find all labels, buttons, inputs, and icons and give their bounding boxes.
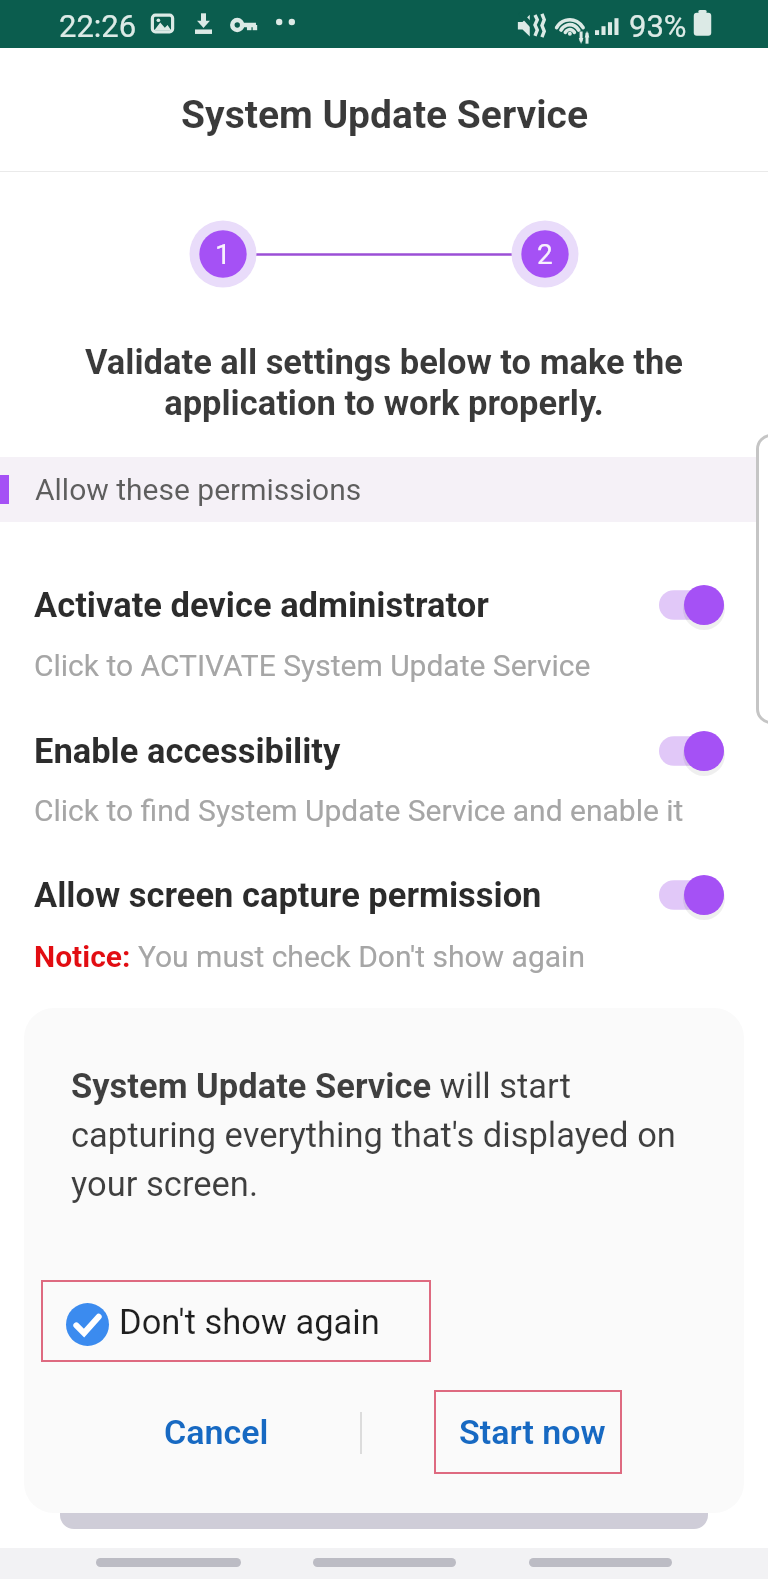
button[interactable]: Back	[529, 1558, 672, 1567]
staticText: Allow screen capture permission	[34, 875, 650, 915]
button[interactable]: Don't show again	[41, 1280, 431, 1362]
button[interactable]: Start now	[434, 1390, 622, 1474]
staticText: 93%	[629, 8, 687, 44]
staticText: Click to find System Update Service and …	[34, 793, 684, 828]
button[interactable]: Recents	[96, 1558, 241, 1567]
button[interactable]: Allow screen capture permission	[0, 873, 768, 917]
staticText: 2	[537, 238, 553, 271]
button[interactable]: Enable accessibility	[0, 729, 768, 773]
staticText: System Update Service will start capturi…	[71, 1066, 691, 1204]
staticText: Enable accessibility	[34, 731, 650, 771]
button[interactable]: Toggle permission	[650, 873, 724, 917]
staticText: 1	[215, 238, 231, 271]
staticText: Click to ACTIVATE System Update Service	[34, 648, 591, 683]
staticText: Allow these permissions	[35, 472, 362, 507]
staticText: Start now	[459, 1412, 606, 1452]
staticText: Validate all settings below to make the …	[0, 342, 768, 424]
staticText: Don't show again	[119, 1302, 380, 1342]
button[interactable]: Toggle permission	[650, 729, 724, 773]
button[interactable]: Toggle permission	[650, 583, 724, 627]
button[interactable]: Cancel	[118, 1390, 315, 1474]
staticText: Activate device administrator	[34, 585, 650, 625]
staticText: System Update Service	[181, 92, 588, 138]
staticText: 22:26	[59, 8, 137, 44]
button[interactable]: Activate device administrator	[0, 583, 768, 627]
button[interactable]: Home	[313, 1558, 456, 1567]
staticText: Cancel	[164, 1412, 269, 1452]
staticText: Notice: You must check Don't show again	[34, 939, 585, 974]
